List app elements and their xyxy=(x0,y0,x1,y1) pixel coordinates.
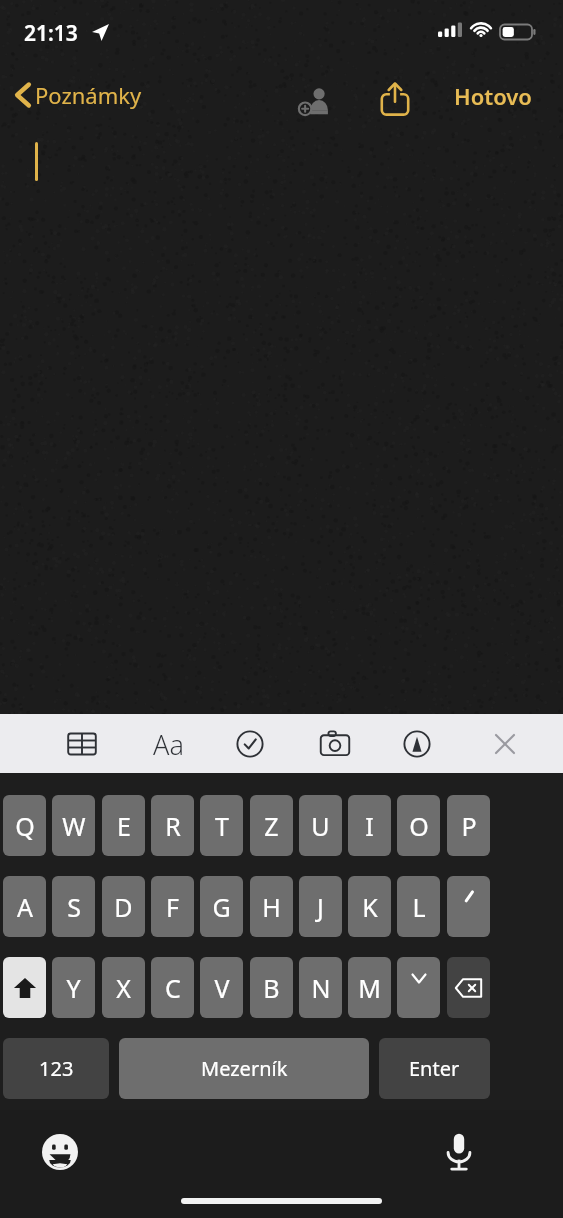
button[interactable]: R xyxy=(151,795,194,856)
staticText: Aa xyxy=(153,726,184,763)
staticText: L xyxy=(412,890,426,924)
button[interactable]: Aa xyxy=(142,722,194,766)
staticText: F xyxy=(166,890,179,924)
button[interactable]: Mezerník xyxy=(119,1038,369,1099)
button[interactable]: Dictate xyxy=(435,1128,483,1176)
button[interactable]: H xyxy=(250,876,293,937)
button[interactable]: D xyxy=(102,876,145,937)
button[interactable]: Emoji xyxy=(36,1128,84,1176)
staticText: V xyxy=(214,971,230,1005)
staticText: Enter xyxy=(409,1055,460,1082)
staticText: J xyxy=(317,890,324,924)
button[interactable]: Shift xyxy=(3,957,46,1018)
button[interactable]: U xyxy=(299,795,342,856)
staticText: X xyxy=(116,971,131,1005)
button[interactable]: M xyxy=(348,957,391,1018)
staticText: E xyxy=(117,809,131,843)
staticText: U xyxy=(311,809,330,843)
button[interactable]: G xyxy=(200,876,243,937)
staticText: Hotovo xyxy=(454,81,532,111)
staticText: T xyxy=(215,809,229,843)
staticText: S xyxy=(67,890,81,924)
staticText: Y xyxy=(66,971,81,1005)
button[interactable]: Q xyxy=(3,795,46,856)
button[interactable]: Enter xyxy=(379,1038,490,1099)
button[interactable]: Share xyxy=(372,76,418,122)
button[interactable]: V xyxy=(200,957,243,1018)
button[interactable]: L xyxy=(397,876,440,937)
button[interactable]: A xyxy=(3,876,46,937)
button[interactable]: Y xyxy=(52,957,95,1018)
button[interactable]: 123 xyxy=(3,1038,109,1099)
button[interactable]: E xyxy=(102,795,145,856)
staticText: C xyxy=(165,971,181,1005)
staticText: W xyxy=(62,809,86,843)
button[interactable]: S xyxy=(52,876,95,937)
button[interactable]: O xyxy=(397,795,440,856)
staticText: 123 xyxy=(39,1055,74,1082)
staticText: M xyxy=(358,971,381,1005)
staticText: R xyxy=(165,809,181,843)
button[interactable]: J xyxy=(299,876,342,937)
button[interactable]: Backspace xyxy=(447,957,490,1018)
button[interactable]: N xyxy=(299,957,342,1018)
staticText: A xyxy=(17,890,33,924)
staticText: Mezerník xyxy=(201,1055,288,1082)
staticText: P xyxy=(461,809,477,843)
button[interactable] xyxy=(447,876,490,937)
button[interactable]: More xyxy=(397,957,440,1018)
button[interactable]: Checklist xyxy=(226,721,274,766)
button[interactable]: B xyxy=(250,957,293,1018)
staticText: G xyxy=(212,890,231,924)
button[interactable]: Z xyxy=(250,795,293,856)
button[interactable]: K xyxy=(348,876,391,937)
button[interactable]: C xyxy=(151,957,194,1018)
staticText: O xyxy=(409,809,429,843)
staticText: 21:13 xyxy=(24,19,78,48)
button[interactable]: T xyxy=(200,795,243,856)
staticText: D xyxy=(114,890,133,924)
button[interactable]: Add people xyxy=(292,78,338,124)
staticText: N xyxy=(311,971,331,1005)
staticText: Z xyxy=(264,809,279,843)
staticText: K xyxy=(362,890,378,924)
button[interactable]: Camera xyxy=(311,721,359,766)
staticText: H xyxy=(262,890,281,924)
staticText: Poznámky xyxy=(35,80,142,110)
button[interactable]: P xyxy=(447,795,490,856)
button[interactable]: Poznámky xyxy=(10,76,148,114)
button[interactable]: Markup xyxy=(393,721,441,766)
button[interactable]: Close keyboard xyxy=(481,721,529,766)
button[interactable]: Hotovo xyxy=(446,76,540,116)
button[interactable]: F xyxy=(151,876,194,937)
button[interactable]: Table xyxy=(58,721,106,766)
button[interactable]: X xyxy=(102,957,145,1018)
staticText: Q xyxy=(15,809,35,843)
staticText: I xyxy=(365,809,374,843)
button[interactable]: W xyxy=(52,795,95,856)
button[interactable]: I xyxy=(348,795,391,856)
staticText: B xyxy=(263,971,280,1005)
